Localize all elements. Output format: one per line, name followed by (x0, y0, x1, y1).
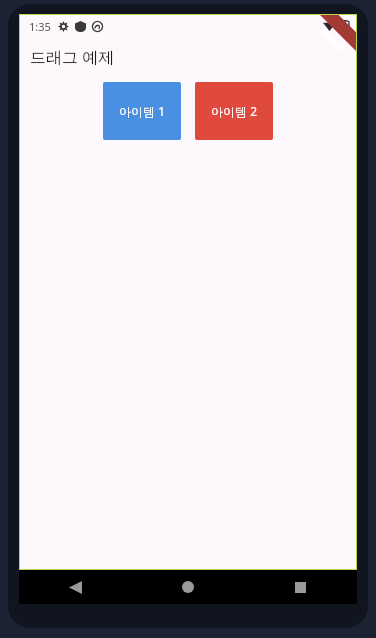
staticText: DEBUG (319, 26, 347, 53)
button[interactable]: 아이템 2 (195, 82, 273, 140)
staticText: 1:35 (29, 19, 51, 34)
staticText: 드래그 예제 (30, 46, 115, 68)
staticText: 아이템 2 (211, 103, 257, 119)
staticText: 아이템 1 (119, 103, 165, 119)
button[interactable]: Recent apps (244, 570, 357, 604)
button[interactable]: Home (131, 570, 244, 604)
button[interactable]: 아이템 1 (103, 82, 181, 140)
button[interactable]: Back (19, 570, 131, 604)
